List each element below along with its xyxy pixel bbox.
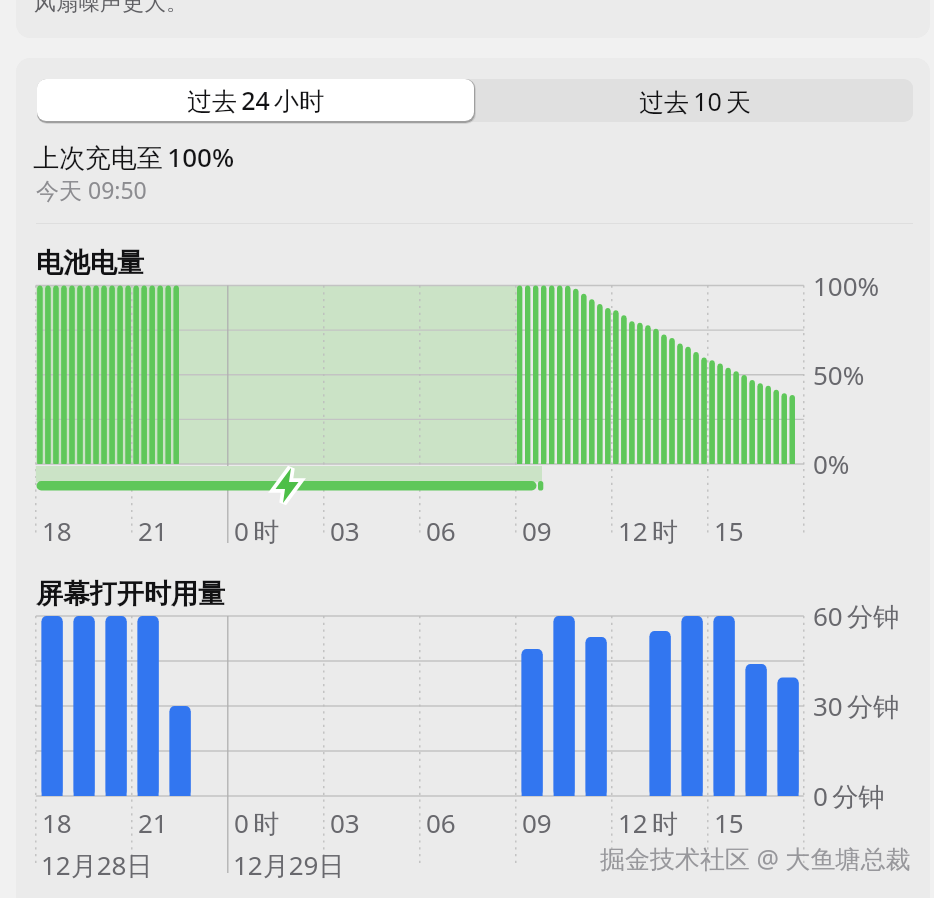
staticText: 掘金技术社区 @ 大鱼塘总裁 bbox=[600, 841, 911, 875]
staticText: 09 bbox=[522, 513, 552, 548]
staticText: 21 bbox=[138, 513, 168, 548]
staticText: 03 bbox=[330, 805, 360, 840]
staticText: 03 bbox=[330, 513, 360, 548]
staticText: 60 分钟 bbox=[813, 598, 900, 634]
staticText: 09 bbox=[522, 805, 552, 840]
staticText: 06 bbox=[426, 513, 456, 548]
staticText: 100% bbox=[813, 268, 880, 303]
staticText: 屏幕打开时用量 bbox=[36, 577, 225, 611]
staticText: 电池电量 bbox=[36, 246, 144, 280]
staticText: 风扇噪声更大。 bbox=[34, 0, 188, 17]
staticText: 30 分钟 bbox=[813, 688, 900, 724]
staticText: 12月29日 bbox=[233, 847, 345, 883]
staticText: 50% bbox=[813, 357, 865, 392]
staticText: 过去 10 天 bbox=[639, 84, 751, 118]
staticText: 0% bbox=[813, 446, 850, 481]
staticText: 18 bbox=[42, 513, 72, 548]
staticText: 12 时 bbox=[618, 805, 679, 841]
staticText: 上次充电至 100% bbox=[33, 139, 235, 175]
staticText: 过去 24 小时 bbox=[187, 83, 324, 117]
staticText: 18 bbox=[42, 805, 72, 840]
staticText: 0 时 bbox=[234, 805, 280, 841]
staticText: 0 时 bbox=[234, 513, 280, 549]
staticText: 今天 09:50 bbox=[36, 174, 147, 205]
staticText: 15 bbox=[714, 513, 744, 548]
staticText: 06 bbox=[426, 805, 456, 840]
staticText: 15 bbox=[714, 805, 744, 840]
button[interactable]: 过去 10 天 bbox=[476, 79, 913, 122]
staticText: 21 bbox=[138, 805, 168, 840]
staticText: 12月28日 bbox=[41, 847, 153, 883]
staticText: 0 分钟 bbox=[813, 778, 885, 814]
staticText: 12 时 bbox=[618, 513, 679, 549]
button[interactable]: 过去 24 小时 bbox=[37, 79, 474, 121]
